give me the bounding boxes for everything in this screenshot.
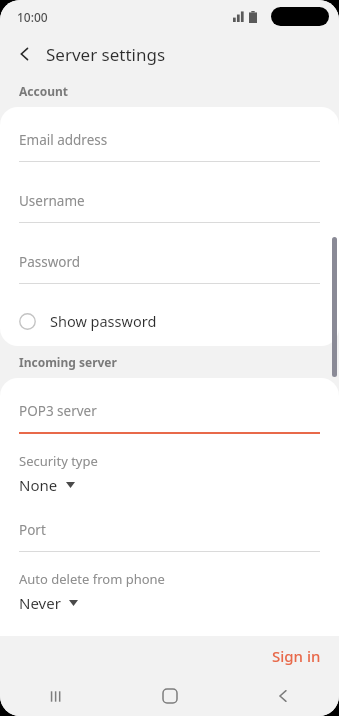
staticText: Never <box>19 593 61 613</box>
button[interactable]: Password <box>0 241 339 302</box>
staticText: Port <box>19 521 46 539</box>
button[interactable]: Auto delete from phone <box>0 570 339 627</box>
staticText: Incoming server <box>19 354 117 370</box>
staticText: None <box>19 475 58 495</box>
button[interactable]: Home <box>113 676 226 716</box>
staticText: Server settings <box>46 43 166 66</box>
button[interactable]: Back <box>226 676 339 716</box>
button[interactable]: Back <box>10 39 40 69</box>
staticText: Show password <box>50 311 157 331</box>
staticText: 10:00 <box>17 9 48 25</box>
staticText: Auto delete from phone <box>19 570 165 588</box>
staticText: Security type <box>19 452 98 470</box>
staticText: Email address <box>19 131 108 149</box>
button[interactable]: Username <box>0 180 339 241</box>
staticText: POP3 server <box>19 402 97 420</box>
staticText: Username <box>19 192 85 210</box>
button[interactable]: Security type <box>0 452 339 509</box>
staticText: Password <box>19 253 81 271</box>
button[interactable]: Sign in <box>254 638 339 674</box>
button[interactable]: Port <box>0 509 339 570</box>
button[interactable]: Show password <box>0 302 339 340</box>
button[interactable]: Recents <box>0 676 113 716</box>
staticText: Sign in <box>272 646 321 666</box>
staticText: Account <box>19 83 68 99</box>
button[interactable]: POP3 server <box>0 390 339 452</box>
button[interactable]: Email address <box>0 119 339 180</box>
